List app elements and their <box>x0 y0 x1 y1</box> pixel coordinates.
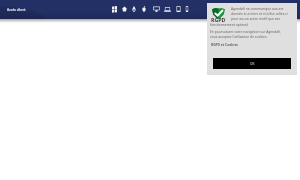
button[interactable]: OK <box>213 58 291 69</box>
staticText: RGPD <box>211 16 226 23</box>
staticText: OK <box>250 62 255 66</box>
button[interactable]: Tablet <box>173 0 183 18</box>
staticText: Agendafi ne communique aucune <box>231 6 284 10</box>
button[interactable]: Apple <box>139 0 149 18</box>
button[interactable]: Desktop <box>151 0 161 18</box>
button[interactable]: Linux <box>119 0 129 18</box>
staticText: pour aucun autre motif que son <box>231 16 281 20</box>
staticText: Accès client <box>7 7 26 12</box>
button[interactable]: Laptop <box>162 0 172 18</box>
button[interactable]: Windows <box>109 0 119 18</box>
staticText: RGPD et Cookies <box>211 42 239 46</box>
button[interactable]: Phone <box>182 0 192 18</box>
staticText: En poursuivant votre navigation sur Agen… <box>210 29 281 33</box>
staticText: vous acceptez l'utilisation de cookies. <box>210 34 268 38</box>
button[interactable]: Accès client <box>7 7 26 12</box>
button[interactable]: Android <box>129 0 139 18</box>
button[interactable]: RGPD et Cookies <box>211 42 239 46</box>
staticText: donnée à un tiers et n'utilise celles-ci <box>231 11 288 15</box>
staticText: fonctionnement optimal. <box>210 22 249 26</box>
